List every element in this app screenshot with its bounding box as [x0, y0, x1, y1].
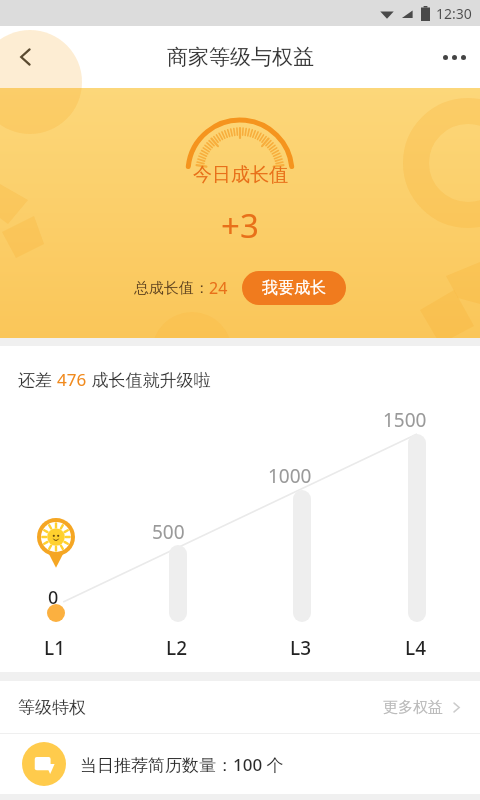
staticText: 还差 [18, 368, 57, 391]
staticText: L3 [290, 635, 312, 661]
staticText: 12:30 [436, 4, 472, 23]
staticText: 商家等级与权益 [167, 44, 314, 70]
button[interactable]: 更多权益 [383, 698, 462, 717]
staticText: L4 [405, 635, 427, 661]
staticText: 当日推荐简历数量：100 个 [80, 753, 284, 776]
staticText: L2 [166, 635, 188, 661]
staticText: 成长值就升级啦 [87, 368, 211, 391]
staticText: +3 [221, 203, 259, 248]
button[interactable]: More options [428, 31, 480, 83]
staticText: 500 [152, 519, 185, 545]
staticText: 等级特权 [18, 697, 86, 718]
staticText: 0 [48, 585, 59, 610]
staticText: 24 [209, 277, 228, 299]
button[interactable]: 当日推荐简历数量：100 个 [0, 734, 480, 794]
staticText: L1 [44, 635, 66, 661]
button[interactable]: 我要成长 [242, 271, 346, 305]
staticText: 1500 [383, 407, 427, 433]
button[interactable]: Back [0, 31, 52, 83]
staticText: 1000 [268, 463, 312, 489]
staticText: 总成长值： [134, 279, 209, 298]
staticText: 今日成长值 [193, 163, 288, 187]
staticText: 更多权益 [383, 698, 443, 717]
staticText: 476 [57, 368, 87, 391]
staticText: 我要成长 [262, 278, 326, 298]
